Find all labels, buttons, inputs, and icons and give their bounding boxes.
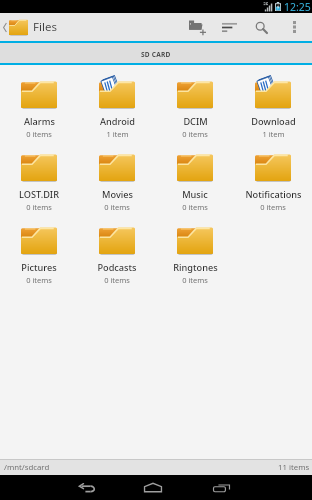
button[interactable]: Ringtones [156, 211, 234, 284]
staticText: Download [251, 115, 296, 128]
button[interactable]: Pictures [0, 211, 78, 284]
staticText: 0 items [104, 275, 130, 284]
button[interactable]: Download [234, 65, 312, 138]
button[interactable]: Search [245, 13, 277, 41]
button[interactable]: Up [0, 19, 61, 35]
staticText: 0 items [260, 202, 286, 211]
staticText: Podcasts [97, 261, 137, 274]
staticText: LOST.DIR [19, 188, 59, 201]
button[interactable]: DCIM [156, 65, 234, 138]
staticText: Ringtones [173, 261, 218, 274]
staticText: 1 item [106, 129, 129, 138]
staticText: 0 items [182, 202, 208, 211]
button[interactable]: Home [118, 475, 187, 500]
button[interactable]: Back [56, 475, 118, 500]
staticText: 0 items [104, 202, 130, 211]
staticText: SD CARD [141, 50, 171, 59]
button[interactable]: Recents [187, 475, 256, 500]
button[interactable]: More options [277, 13, 312, 41]
staticText: 11 items [278, 462, 310, 473]
button[interactable]: LOST.DIR [0, 138, 78, 211]
staticText: Pictures [21, 261, 57, 274]
other: Up [3, 23, 7, 32]
button[interactable]: Notifications [234, 138, 312, 211]
staticText: 12:25 [284, 0, 311, 13]
button[interactable]: SD CARD [0, 43, 312, 63]
button[interactable]: Alarms [0, 65, 78, 138]
staticText: Android [100, 115, 135, 128]
staticText: /mnt/sdcard [4, 462, 50, 473]
button[interactable]: Sort [213, 13, 245, 41]
staticText: 1 item [262, 129, 285, 138]
staticText: Music [182, 188, 208, 201]
staticText: Files [33, 19, 57, 35]
staticText: Alarms [24, 115, 55, 128]
button[interactable]: Podcasts [78, 211, 156, 284]
staticText: Movies [102, 188, 133, 201]
staticText: 0 items [26, 275, 52, 284]
staticText: 0 items [26, 202, 52, 211]
button[interactable]: Movies [78, 138, 156, 211]
button[interactable]: New folder [181, 13, 213, 41]
button[interactable]: Music [156, 138, 234, 211]
staticText: 0 items [26, 129, 52, 138]
staticText: 0 items [182, 129, 208, 138]
button[interactable]: Android [78, 65, 156, 138]
staticText: 0 items [182, 275, 208, 284]
staticText: Notifications [245, 188, 302, 201]
staticText: DCIM [183, 115, 208, 128]
